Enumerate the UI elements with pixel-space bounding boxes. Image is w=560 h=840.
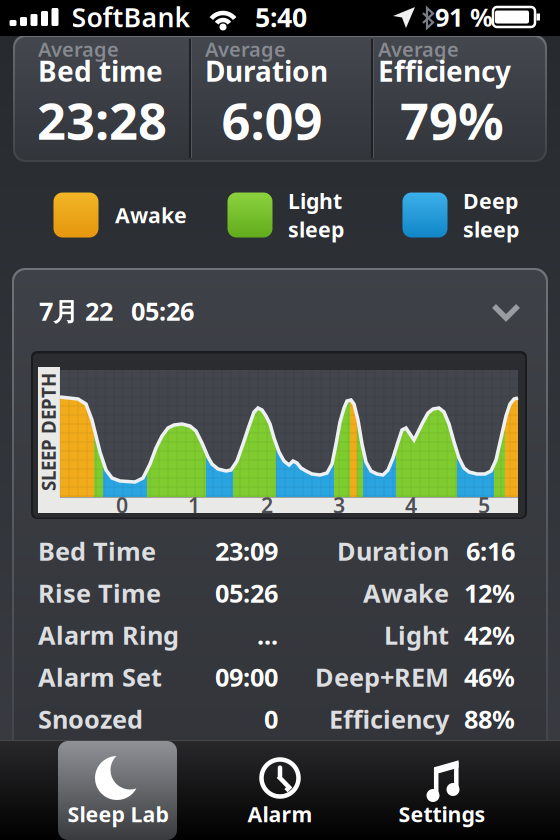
- staticText: 2: [261, 491, 273, 519]
- staticText: 0: [116, 491, 128, 519]
- staticText: ...: [257, 618, 278, 652]
- button[interactable]: Alarm: [220, 740, 340, 840]
- staticText: 6:09: [221, 86, 322, 154]
- staticText: Bed time: [38, 52, 163, 90]
- staticText: 5: [478, 491, 490, 519]
- button[interactable]: Settings: [382, 740, 502, 840]
- staticText: SLEEP DEPTH: [0, 420, 107, 444]
- staticText: Alarm Ring: [38, 618, 179, 652]
- staticText: Light: [384, 618, 449, 652]
- staticText: Average: [378, 36, 459, 62]
- staticText: 1: [188, 491, 200, 519]
- staticText: 09:00: [215, 660, 278, 694]
- staticText: Duration: [205, 52, 328, 90]
- button[interactable]: Sleep Lab: [58, 740, 177, 840]
- staticText: Awake: [115, 201, 187, 229]
- staticText: Average: [205, 36, 286, 62]
- staticText: 91 %: [435, 0, 493, 34]
- staticText: Efficiency: [378, 52, 511, 90]
- staticText: 88%: [464, 702, 515, 736]
- staticText: 5:40: [255, 0, 307, 35]
- staticText: 4: [405, 491, 417, 519]
- staticText: Bed Time: [38, 534, 156, 568]
- staticText: 79%: [400, 86, 504, 154]
- staticText: Deep+REM: [315, 660, 449, 694]
- staticText: Deep sleep: [463, 187, 519, 243]
- staticText: Awake: [363, 576, 449, 610]
- staticText: 05:26: [131, 294, 194, 328]
- staticText: Sleep Lab: [67, 800, 168, 828]
- button[interactable]: Toggle day details: [14, 268, 546, 330]
- staticText: 7月 22: [39, 294, 113, 328]
- staticText: Duration: [337, 534, 449, 568]
- staticText: 0: [264, 702, 278, 736]
- staticText: Rise Time: [38, 576, 161, 610]
- staticText: 6:16: [466, 534, 515, 568]
- staticText: 12%: [464, 576, 515, 610]
- staticText: 05:26: [215, 576, 278, 610]
- staticText: Light sleep: [288, 187, 344, 243]
- staticText: Alarm Set: [38, 660, 162, 694]
- staticText: 3: [333, 491, 345, 519]
- staticText: Snoozed: [38, 702, 143, 736]
- staticText: Alarm: [247, 800, 312, 828]
- staticText: 23:09: [215, 534, 278, 568]
- staticText: Efficiency: [329, 702, 449, 736]
- staticText: 42%: [464, 618, 515, 652]
- staticText: 23:28: [37, 86, 167, 154]
- staticText: 46%: [464, 660, 515, 694]
- staticText: Average: [38, 36, 119, 62]
- staticText: SoftBank: [71, 0, 190, 35]
- staticText: Settings: [398, 800, 485, 828]
